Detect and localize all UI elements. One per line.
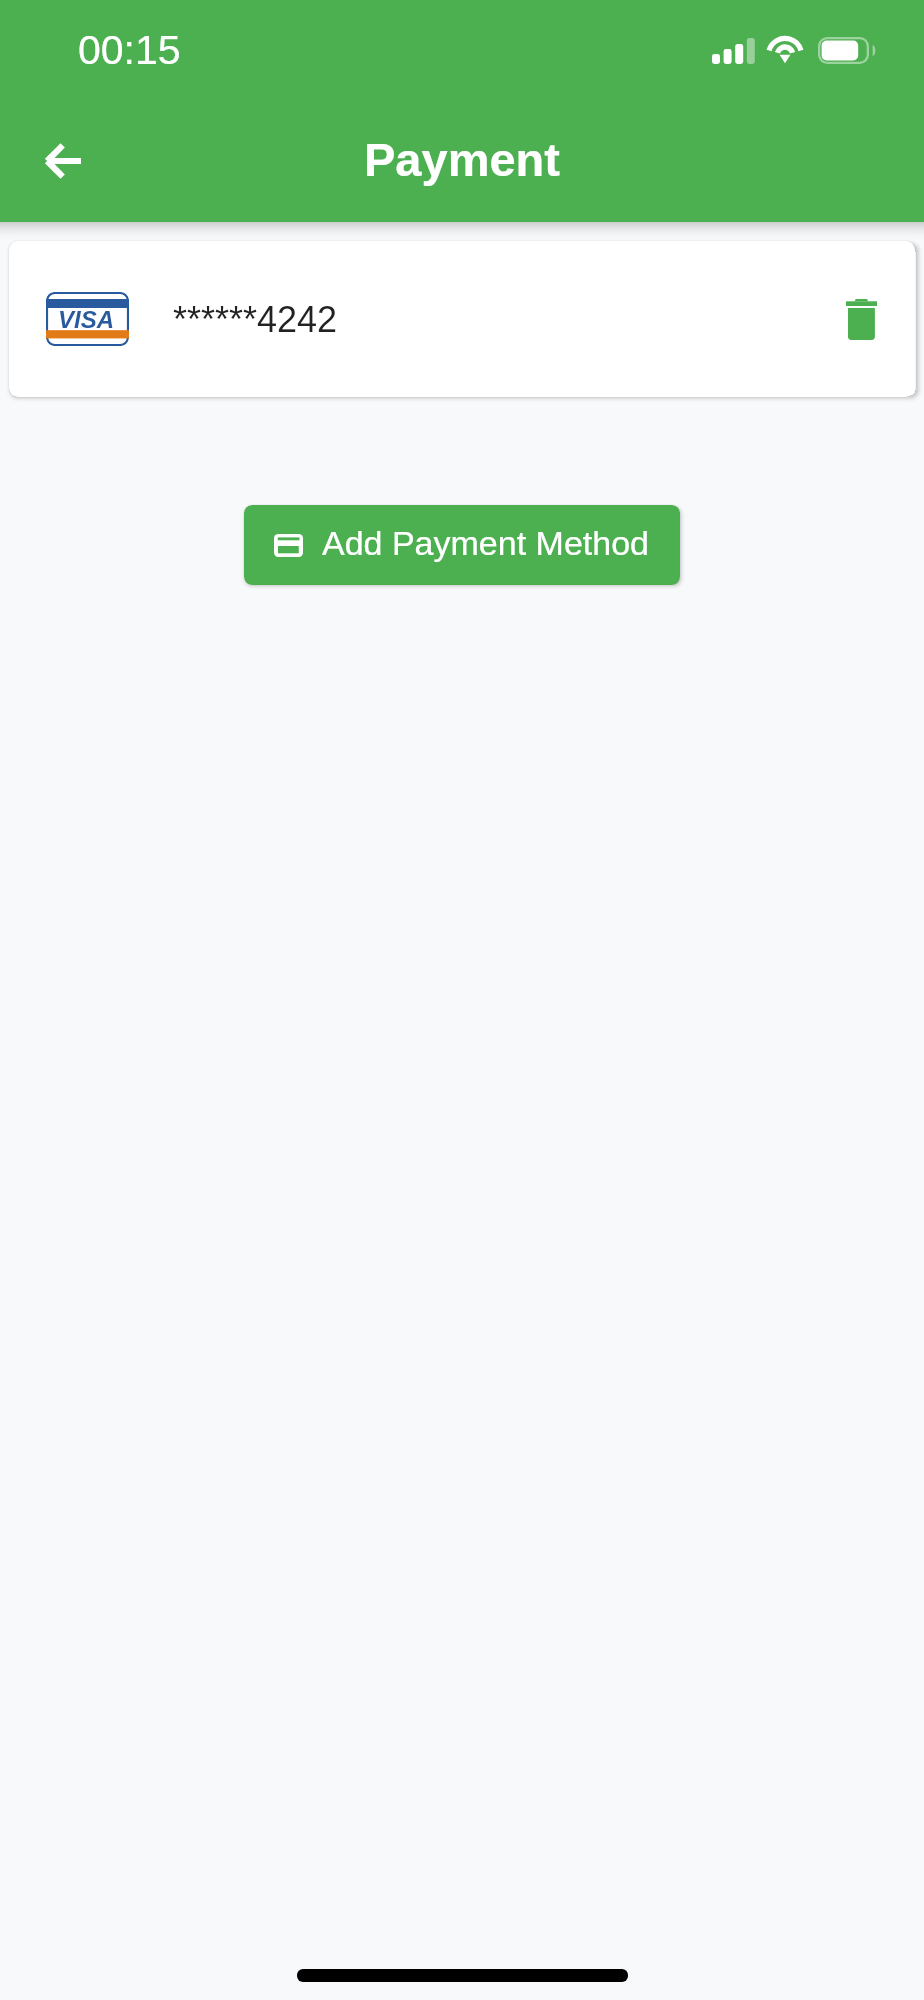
button[interactable]: Delete card: [833, 291, 889, 347]
staticText: Payment: [364, 133, 560, 186]
staticText: Add Payment Method: [322, 524, 649, 562]
button[interactable]: Add Payment Method: [244, 505, 680, 585]
staticText: 00:15: [78, 27, 181, 73]
button[interactable]: Back: [18, 117, 106, 205]
staticText: ******4242: [173, 299, 338, 339]
button[interactable]: VISA: [9, 241, 915, 397]
staticText: VISA: [58, 306, 115, 333]
